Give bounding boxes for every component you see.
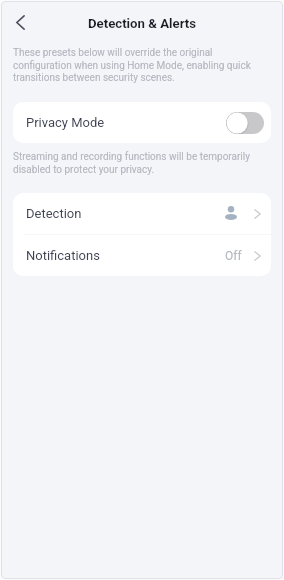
staticText: Detection [26, 206, 82, 221]
staticText: Streaming and recording functions will b… [13, 151, 271, 175]
staticText: Privacy Mode [26, 115, 105, 130]
staticText: These presets below will override the or… [13, 47, 271, 83]
button[interactable]: Notifications [13, 235, 271, 276]
button[interactable]: Privacy Mode [13, 102, 271, 143]
button[interactable]: Detection [13, 193, 271, 234]
button[interactable]: Back [5, 7, 36, 38]
button[interactable]: Privacy Mode toggle, off [226, 112, 264, 134]
staticText: Notifications [26, 248, 100, 263]
staticText: Detection & Alerts [88, 16, 197, 31]
staticText: Off [225, 249, 242, 263]
